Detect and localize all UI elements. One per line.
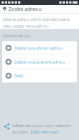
- button[interactable]: Zadejte svou domácí adresu: [2, 41, 77, 55]
- button[interactable]: Další: [2, 69, 77, 82]
- button[interactable]: Další informace: [30, 129, 58, 134]
- staticText: Zvolte adresu: [8, 5, 41, 13]
- staticText: Vyberte jednu z vašich uložených adres: [3, 16, 70, 22]
- staticText: Zadejte svou domácí adresu: [14, 45, 62, 51]
- staticText: Uložené adresy: [3, 33, 30, 38]
- staticText: Sdílejte adresy se svým rodinným: [12, 123, 71, 128]
- staticText: nebo zadejte novou adresu.: [3, 23, 49, 29]
- staticText: okruhem.: [12, 129, 29, 134]
- staticText: Další: [14, 73, 23, 78]
- staticText: Zadejte svou pracovní adresu: [14, 59, 64, 64]
- staticText: Další informace: [30, 129, 58, 134]
- button[interactable]: Zadejte svou pracovní adresu: [2, 55, 77, 68]
